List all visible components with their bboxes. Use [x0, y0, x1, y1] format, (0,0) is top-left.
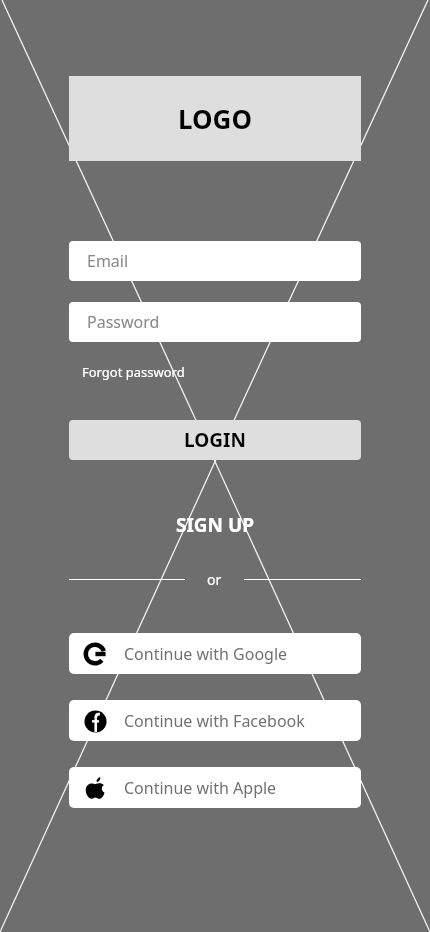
staticText: Continue with Facebook [124, 710, 305, 732]
button[interactable]: Password [69, 302, 361, 342]
staticText: or [207, 570, 222, 589]
staticText: LOGO [178, 101, 252, 136]
staticText: SIGN UP [176, 512, 255, 538]
other: Facebook [83, 709, 107, 733]
button[interactable]: Forgot password [69, 363, 185, 381]
button[interactable]: LOGIN [69, 420, 361, 460]
staticText: Continue with Google [124, 643, 288, 665]
button[interactable]: LOGO [69, 76, 361, 161]
other: Apple [83, 776, 107, 800]
button[interactable]: Apple [69, 767, 361, 808]
other: Google [83, 642, 107, 666]
button[interactable]: SIGN UP [69, 512, 361, 538]
button[interactable]: Facebook [69, 700, 361, 741]
button[interactable]: Google [69, 633, 361, 674]
button[interactable]: Email [69, 241, 361, 281]
staticText: Continue with Apple [124, 777, 277, 799]
staticText: Password [87, 311, 160, 333]
staticText: LOGIN [184, 427, 246, 453]
staticText: Forgot password [82, 363, 185, 381]
staticText: Email [87, 250, 129, 272]
